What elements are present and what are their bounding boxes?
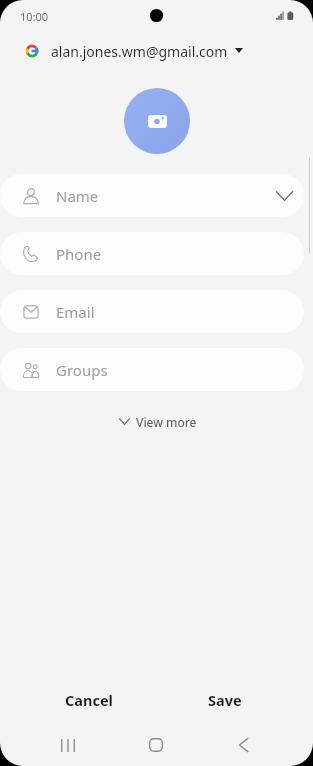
- staticText: Email: [56, 302, 95, 322]
- button[interactable]: Groups: [0, 348, 304, 391]
- staticText: Groups: [56, 360, 108, 380]
- staticText: alan.jones.wm@gmail.com: [51, 42, 228, 61]
- button[interactable]: Recents: [40, 724, 96, 766]
- button[interactable]: View more: [110, 409, 209, 435]
- button[interactable]: alan.jones.wm@gmail.com: [0, 37, 313, 65]
- button[interactable]: Phone: [0, 232, 304, 275]
- button[interactable]: Email: [0, 290, 304, 333]
- staticText: Save: [208, 690, 242, 710]
- button[interactable]: Add photo: [124, 88, 190, 154]
- button[interactable]: Back: [215, 724, 271, 766]
- button[interactable]: Home: [128, 724, 184, 766]
- staticText: View more: [136, 414, 197, 430]
- button[interactable]: Name: [0, 174, 304, 217]
- staticText: Name: [56, 186, 99, 206]
- button[interactable]: Cancel: [35, 682, 143, 718]
- staticText: 10:00: [20, 9, 49, 24]
- staticText: Phone: [56, 244, 102, 264]
- button[interactable]: Save: [171, 682, 279, 718]
- staticText: Cancel: [65, 690, 113, 710]
